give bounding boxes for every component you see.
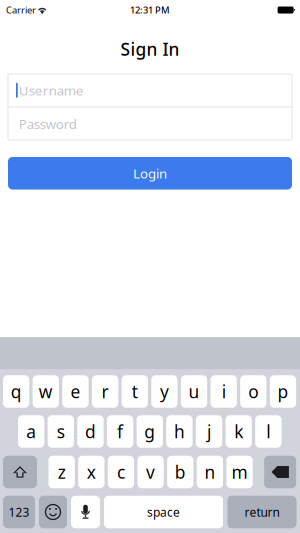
button[interactable]: y — [151, 375, 177, 408]
staticText: b — [175, 460, 186, 483]
staticText: h — [174, 420, 185, 443]
button[interactable]: return — [227, 496, 296, 528]
staticText: a — [26, 420, 36, 443]
staticText: 123 — [8, 504, 29, 520]
button[interactable]: e — [62, 375, 89, 408]
staticText: s — [57, 420, 65, 443]
button[interactable]: p — [270, 375, 296, 408]
button[interactable]: a — [18, 415, 44, 448]
button[interactable]: m — [226, 456, 253, 488]
staticText: i — [222, 380, 226, 403]
staticText: q — [11, 380, 22, 403]
staticText: m — [232, 460, 248, 483]
button[interactable]: Dictation — [71, 496, 100, 528]
button[interactable]: t — [122, 375, 148, 408]
staticText: w — [39, 380, 53, 403]
button[interactable]: i — [211, 375, 237, 408]
staticText: t — [132, 380, 138, 403]
button[interactable]: Emoji — [39, 496, 67, 528]
staticText: k — [234, 420, 243, 443]
staticText: x — [87, 460, 96, 483]
button[interactable]: w — [33, 375, 59, 408]
staticText: f — [117, 420, 123, 443]
button[interactable]: Shift — [3, 456, 37, 488]
staticText: j — [207, 420, 211, 443]
button[interactable]: n — [197, 456, 223, 488]
button[interactable]: f — [107, 415, 133, 448]
staticText: u — [189, 380, 200, 403]
button[interactable]: u — [181, 375, 207, 408]
staticText: v — [146, 460, 155, 483]
button[interactable]: g — [137, 415, 163, 448]
button[interactable]: v — [137, 456, 164, 488]
button[interactable]: c — [108, 456, 134, 488]
button[interactable]: j — [196, 415, 222, 448]
button[interactable]: d — [77, 415, 104, 448]
button[interactable]: r — [92, 375, 118, 408]
staticText: y — [160, 380, 169, 403]
staticText: Carrier — [6, 4, 36, 16]
button[interactable]: s — [48, 415, 74, 448]
staticText: l — [266, 420, 270, 443]
staticText: r — [102, 380, 109, 403]
staticText: Password — [19, 115, 77, 133]
staticText: Username — [19, 81, 84, 99]
button[interactable]: l — [255, 415, 281, 448]
staticText: return — [244, 504, 279, 520]
button[interactable]: q — [3, 375, 29, 408]
staticText: space — [147, 504, 180, 520]
button[interactable]: h — [166, 415, 192, 448]
button[interactable]: b — [167, 456, 193, 488]
button[interactable]: Delete — [264, 456, 296, 488]
staticText: n — [204, 460, 215, 483]
staticText: Sign In — [120, 37, 179, 60]
staticText: e — [70, 380, 80, 403]
staticText: o — [248, 380, 258, 403]
staticText: Login — [133, 164, 167, 182]
staticText: g — [144, 420, 155, 443]
button[interactable]: z — [48, 456, 75, 488]
staticText: z — [58, 460, 66, 483]
staticText: p — [277, 380, 288, 403]
button[interactable]: Login — [8, 157, 292, 189]
staticText: 12:31 PM — [130, 4, 170, 16]
staticText: d — [85, 420, 96, 443]
staticText: c — [117, 460, 125, 483]
button[interactable]: x — [78, 456, 104, 488]
button[interactable]: 123 — [3, 496, 35, 528]
button[interactable]: k — [226, 415, 252, 448]
button[interactable]: space — [104, 496, 223, 528]
button[interactable]: o — [240, 375, 266, 408]
